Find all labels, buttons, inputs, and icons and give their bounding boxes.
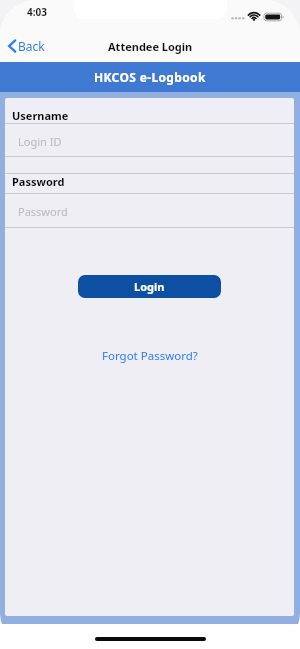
staticText: Login	[134, 279, 165, 294]
staticText: Attendee Login	[108, 39, 193, 54]
button[interactable]: Back	[0, 38, 45, 54]
staticText: 4:03	[27, 5, 47, 19]
button[interactable]: Forgot Password?	[102, 348, 198, 364]
staticText: Password	[18, 204, 68, 219]
staticText: Username	[12, 108, 69, 123]
button[interactable]: Login ID	[5, 124, 294, 156]
staticText: Back	[18, 38, 45, 54]
staticText: HKCOS e-Logbook	[94, 69, 206, 85]
button[interactable]: Login	[78, 275, 221, 298]
staticText: Forgot Password?	[102, 348, 198, 364]
staticText: Login ID	[18, 134, 62, 149]
staticText: Password	[12, 174, 65, 189]
button[interactable]: Password	[5, 194, 294, 227]
